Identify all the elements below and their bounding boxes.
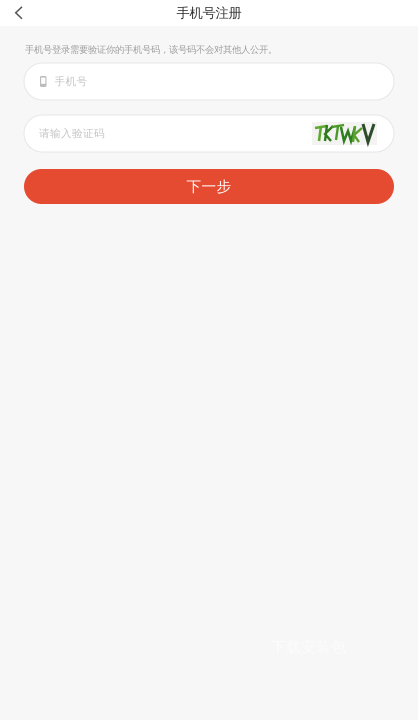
staticText: 手机号 [54,75,87,88]
staticText: 下一步 [186,177,231,195]
button[interactable]: 下一步 [24,169,394,204]
staticText: 手机号登录需要验证你的手机号码，该号码不会对其他人公开。 [25,44,277,55]
staticText: 请输入验证码 [39,127,105,140]
button[interactable]: Back [0,0,38,26]
staticText: 手机号注册 [176,5,241,21]
